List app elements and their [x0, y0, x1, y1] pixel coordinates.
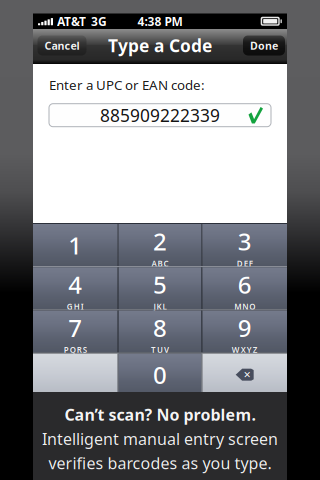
staticText: 1	[68, 229, 82, 261]
button[interactable]: 0	[119, 354, 201, 396]
button[interactable]: 8	[119, 310, 201, 353]
staticText: 4	[68, 269, 82, 300]
button[interactable]: Cancel	[37, 35, 86, 55]
staticText: 4:38 PM	[137, 13, 182, 29]
button[interactable]: Delete	[202, 354, 287, 396]
button[interactable]: Blank	[33, 354, 118, 396]
staticText: Cancel	[44, 38, 79, 53]
staticText: A B C	[151, 258, 168, 269]
button[interactable]: 1	[33, 224, 118, 266]
staticText: W X Y Z	[232, 345, 258, 355]
staticText: J K L	[153, 301, 166, 312]
staticText: ✕	[243, 369, 251, 380]
staticText: 3G	[91, 13, 107, 29]
staticText: D E F	[237, 258, 253, 269]
staticText: AT&T	[57, 13, 86, 29]
button[interactable]: 2	[119, 224, 201, 266]
staticText: 3	[238, 225, 252, 257]
staticText: 7	[68, 312, 82, 344]
staticText: G H I	[67, 301, 84, 312]
staticText: P Q R S	[64, 345, 87, 355]
button[interactable]: 4	[33, 267, 118, 309]
staticText: M N O	[234, 301, 255, 312]
staticText: 9	[238, 312, 252, 344]
button[interactable]: 9	[202, 310, 287, 353]
staticText: Done	[250, 38, 278, 53]
staticText: verifies barcodes as you type.	[48, 452, 271, 474]
staticText: T U V	[151, 345, 169, 355]
button[interactable]: 5	[119, 267, 201, 309]
staticText: 0	[153, 359, 167, 391]
staticText: Can’t scan? No problem.	[64, 404, 255, 425]
staticText: 6	[238, 269, 252, 300]
staticText: 2	[153, 225, 167, 257]
button[interactable]: 6	[202, 267, 287, 309]
staticText: Intelligent manual entry screen	[42, 428, 278, 449]
staticText: Type a Code	[108, 34, 212, 57]
button[interactable]: Done	[243, 35, 285, 55]
button[interactable]: 7	[33, 310, 118, 353]
button[interactable]: 3	[202, 224, 287, 266]
staticText: Enter a UPC or EAN code:	[49, 76, 205, 94]
staticText: 5	[153, 269, 167, 300]
staticText: 885909222339	[100, 104, 220, 127]
staticText: 8	[153, 312, 167, 344]
